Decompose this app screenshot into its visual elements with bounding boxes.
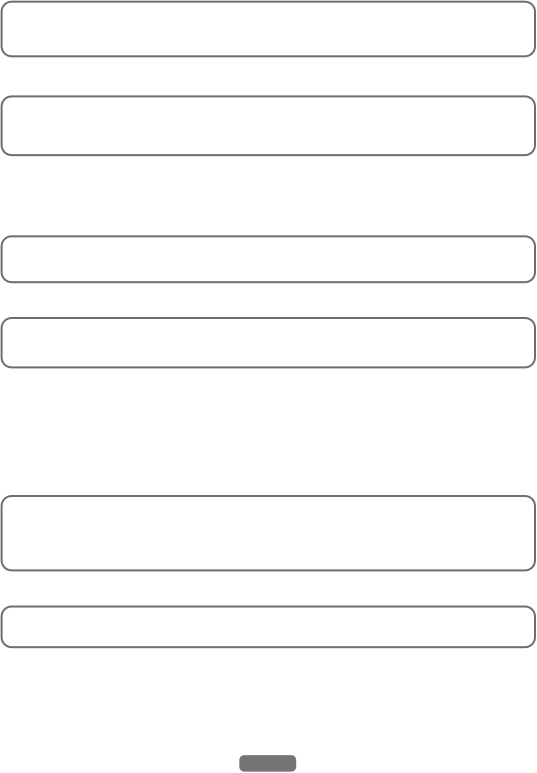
button[interactable]: Field 4 xyxy=(2,318,535,367)
button[interactable]: Field 2 xyxy=(2,96,535,155)
button[interactable]: Field 6 xyxy=(2,606,535,647)
button[interactable]: Field 1 xyxy=(2,2,535,56)
button[interactable]: Field 3 xyxy=(2,236,535,282)
button[interactable]: Field 5 xyxy=(2,496,535,570)
